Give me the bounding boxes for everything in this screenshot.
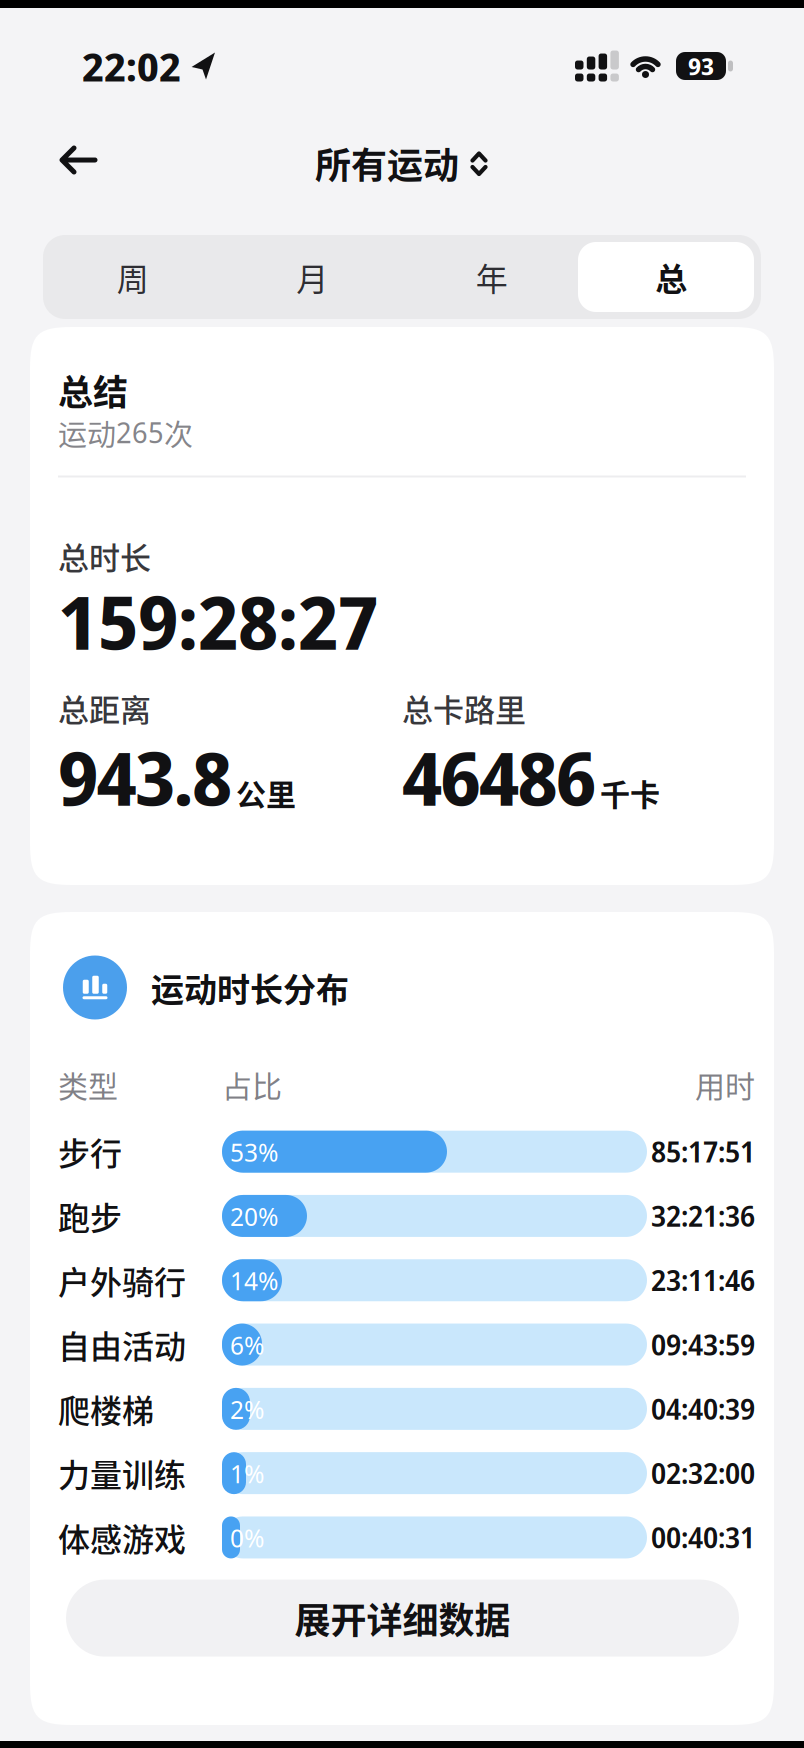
staticText: 自由活动 [58, 1321, 186, 1368]
staticText: 占比 [222, 1063, 282, 1106]
staticText: 02:32:00 [651, 1454, 755, 1492]
staticText: 月 [296, 254, 328, 300]
staticText: 户外骑行 [58, 1257, 186, 1303]
staticText: 22:02 [82, 39, 181, 93]
button[interactable]: 月 [222, 235, 402, 319]
staticText: 爬楼梯 [58, 1386, 154, 1432]
staticText: 14% [230, 1262, 278, 1298]
staticText: 00:40:31 [651, 1518, 755, 1556]
staticText: 跑步 [58, 1193, 122, 1239]
button[interactable]: 总 [581, 235, 761, 319]
staticText: 32:21:36 [651, 1197, 755, 1235]
staticText: 展开详细数据 [294, 1592, 510, 1644]
staticText: 公里 [236, 771, 296, 814]
staticText: 20% [230, 1198, 278, 1234]
staticText: 85:17:51 [651, 1133, 755, 1171]
staticText: 总结 [58, 365, 128, 415]
staticText: 总 [655, 254, 687, 300]
staticText: 1% [230, 1455, 264, 1491]
button[interactable]: 展开详细数据 [66, 1580, 739, 1657]
staticText: 年 [476, 254, 508, 300]
staticText: 09:43:59 [651, 1325, 755, 1364]
staticText: 943.8 [58, 727, 232, 827]
staticText: 用时 [695, 1063, 755, 1106]
staticText: 步行 [58, 1128, 122, 1175]
staticText: 所有运动 [315, 137, 459, 189]
staticText: 159:28:27 [58, 571, 378, 671]
staticText: 53% [230, 1134, 278, 1169]
staticText: 运动时长分布 [151, 964, 349, 1011]
button[interactable]: Back [0, 130, 98, 190]
staticText: 千卡 [600, 771, 660, 814]
staticText: 0% [230, 1520, 264, 1555]
staticText: 周 [117, 254, 149, 300]
staticText: 总距离 [58, 686, 151, 730]
staticText: 总卡路里 [402, 686, 526, 730]
staticText: 46486 [402, 727, 596, 827]
button[interactable]: 所有运动 [315, 137, 489, 189]
staticText: 总时长 [58, 534, 151, 578]
staticText: 2% [230, 1391, 264, 1426]
button[interactable]: 周 [43, 235, 222, 319]
staticText: 力量训练 [58, 1450, 186, 1496]
staticText: 23:11:46 [651, 1261, 755, 1299]
staticText: 6% [230, 1327, 264, 1362]
staticText: 运动265次 [58, 412, 193, 454]
button[interactable]: 年 [402, 235, 581, 319]
staticText: 类型 [58, 1063, 118, 1106]
staticText: 体感游戏 [58, 1514, 186, 1561]
staticText: 04:40:39 [651, 1390, 755, 1428]
staticText: 93 [688, 50, 714, 82]
